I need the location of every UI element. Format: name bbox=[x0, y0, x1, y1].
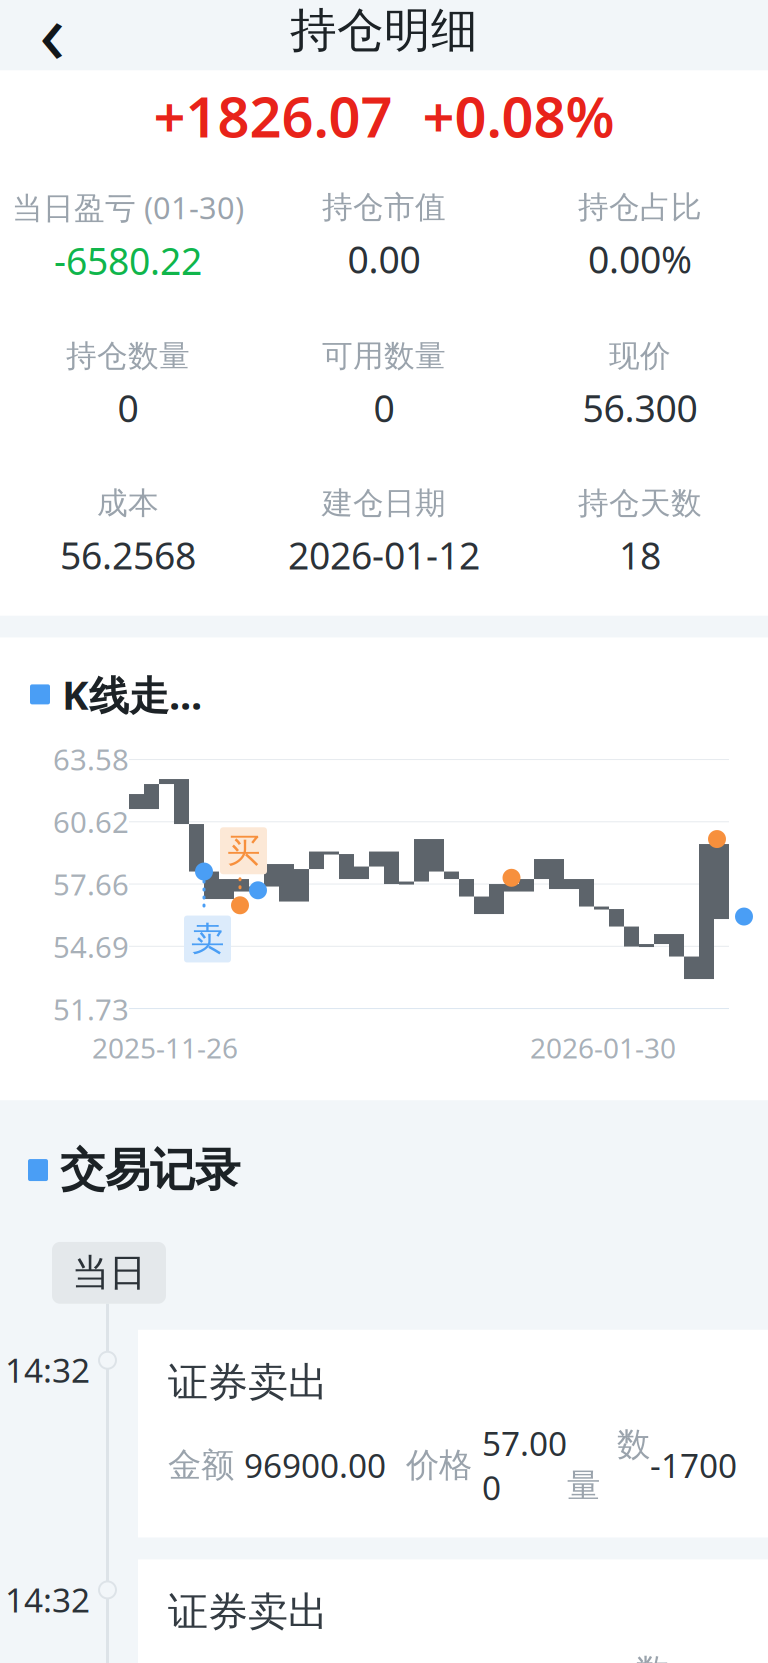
staticText: 买 bbox=[227, 830, 260, 871]
staticText: 建仓日期 bbox=[322, 484, 446, 522]
staticText: 金额 bbox=[168, 1445, 244, 1486]
staticText: 持仓数量 bbox=[66, 337, 190, 375]
staticText: 卖 bbox=[191, 918, 224, 959]
staticText: 证券卖出 bbox=[168, 1587, 328, 1636]
staticText: 0 bbox=[117, 383, 138, 432]
button[interactable]: 证券卖出 bbox=[138, 1330, 768, 1537]
staticText: 2025-11-26 bbox=[92, 1029, 238, 1066]
staticText: 2026-01-30 bbox=[530, 1029, 676, 1066]
staticText: 数量 bbox=[586, 1651, 669, 1663]
staticText: 价格 bbox=[386, 1445, 482, 1486]
staticText: 63.58 bbox=[53, 740, 129, 779]
staticText: +1826.07 +0.08% bbox=[153, 79, 614, 153]
staticText: 持仓占比 bbox=[578, 188, 702, 226]
staticText: 0 bbox=[373, 383, 394, 432]
staticText: 56.2568 bbox=[60, 530, 196, 580]
button[interactable]: 证券卖出 bbox=[138, 1559, 768, 1663]
staticText: 当日 bbox=[72, 1250, 146, 1296]
staticText: 51.73 bbox=[53, 990, 129, 1029]
staticText: 14:32 bbox=[5, 1348, 90, 1392]
staticText: 96900.00 bbox=[244, 1443, 386, 1487]
staticText: K线走... bbox=[62, 668, 202, 721]
staticText: ‹ bbox=[39, 0, 65, 87]
staticText: 14:32 bbox=[5, 1577, 90, 1622]
staticText: 54.69 bbox=[53, 927, 129, 966]
staticText: 持仓天数 bbox=[578, 484, 702, 522]
staticText: 0.00% bbox=[588, 234, 692, 284]
button[interactable]: 返回 bbox=[14, 0, 90, 69]
staticText: 持仓明细 bbox=[290, 2, 478, 59]
staticText: 60.62 bbox=[53, 802, 129, 841]
staticText: 持仓市值 bbox=[322, 188, 446, 226]
staticText: 57.000 bbox=[482, 1421, 567, 1509]
staticText: 交易记录 bbox=[60, 1142, 240, 1198]
staticText: 当日盈亏 (01-30) bbox=[12, 187, 244, 228]
staticText: 18 bbox=[619, 530, 661, 580]
staticText: 成本 bbox=[97, 484, 159, 522]
staticText: 57.66 bbox=[53, 865, 129, 904]
staticText: -1700 bbox=[650, 1443, 737, 1487]
staticText: 56.300 bbox=[582, 383, 697, 432]
staticText: 2026-01-12 bbox=[288, 530, 480, 580]
staticText: -6580.22 bbox=[54, 236, 202, 285]
staticText: 0.00 bbox=[347, 234, 420, 284]
staticText: 可用数量 bbox=[322, 337, 446, 375]
staticText: 现价 bbox=[609, 337, 671, 375]
staticText: 证券卖出 bbox=[168, 1358, 328, 1407]
staticText: 数量 bbox=[567, 1424, 650, 1506]
